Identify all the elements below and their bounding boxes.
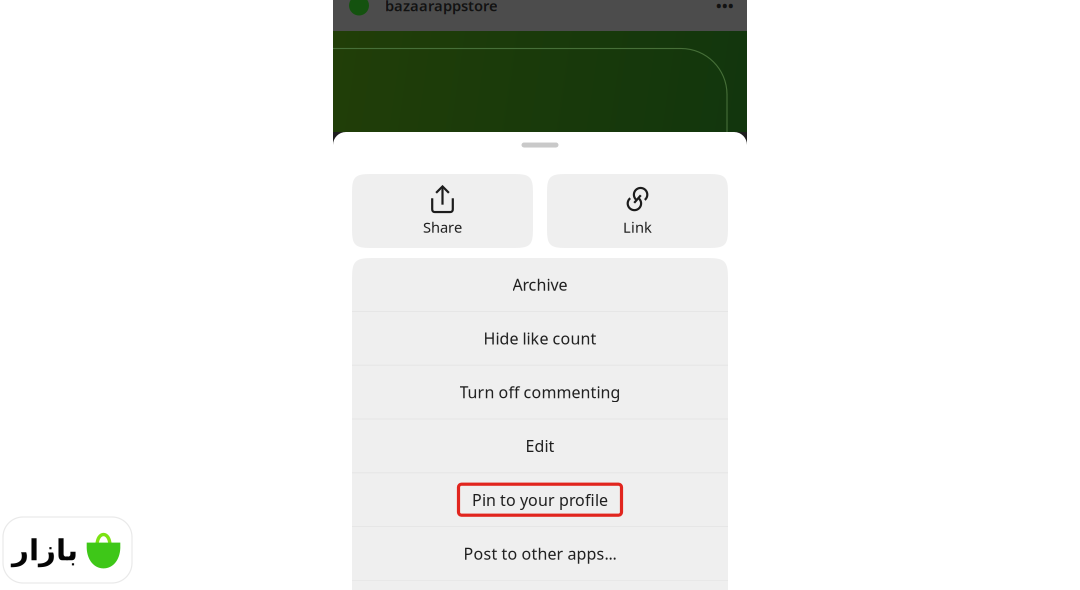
staticText: Archive	[512, 274, 567, 295]
staticText: bazaarappstore	[385, 0, 498, 15]
staticText: Post to other apps...	[463, 543, 616, 564]
staticText: Hide like count	[483, 328, 596, 349]
button[interactable]: Hide like count	[352, 312, 728, 365]
button[interactable]: Edit	[352, 419, 728, 472]
staticText: Pin to your profile	[472, 489, 608, 510]
staticText: Share	[423, 217, 462, 237]
button[interactable]: Archive	[352, 258, 728, 311]
staticText: بازار	[11, 533, 77, 567]
button[interactable]: Turn off commenting	[352, 366, 728, 419]
staticText: Turn off commenting	[459, 381, 620, 403]
button[interactable]: Share	[352, 174, 533, 248]
staticText: •••	[716, 0, 734, 15]
button[interactable]: Post to other apps...	[352, 527, 728, 580]
button[interactable]: Link	[547, 174, 728, 248]
staticText: Edit	[525, 435, 554, 456]
button[interactable]: Pin to your profile	[352, 473, 728, 526]
staticText: Link	[623, 217, 652, 237]
button[interactable]: More options	[711, 0, 739, 14]
